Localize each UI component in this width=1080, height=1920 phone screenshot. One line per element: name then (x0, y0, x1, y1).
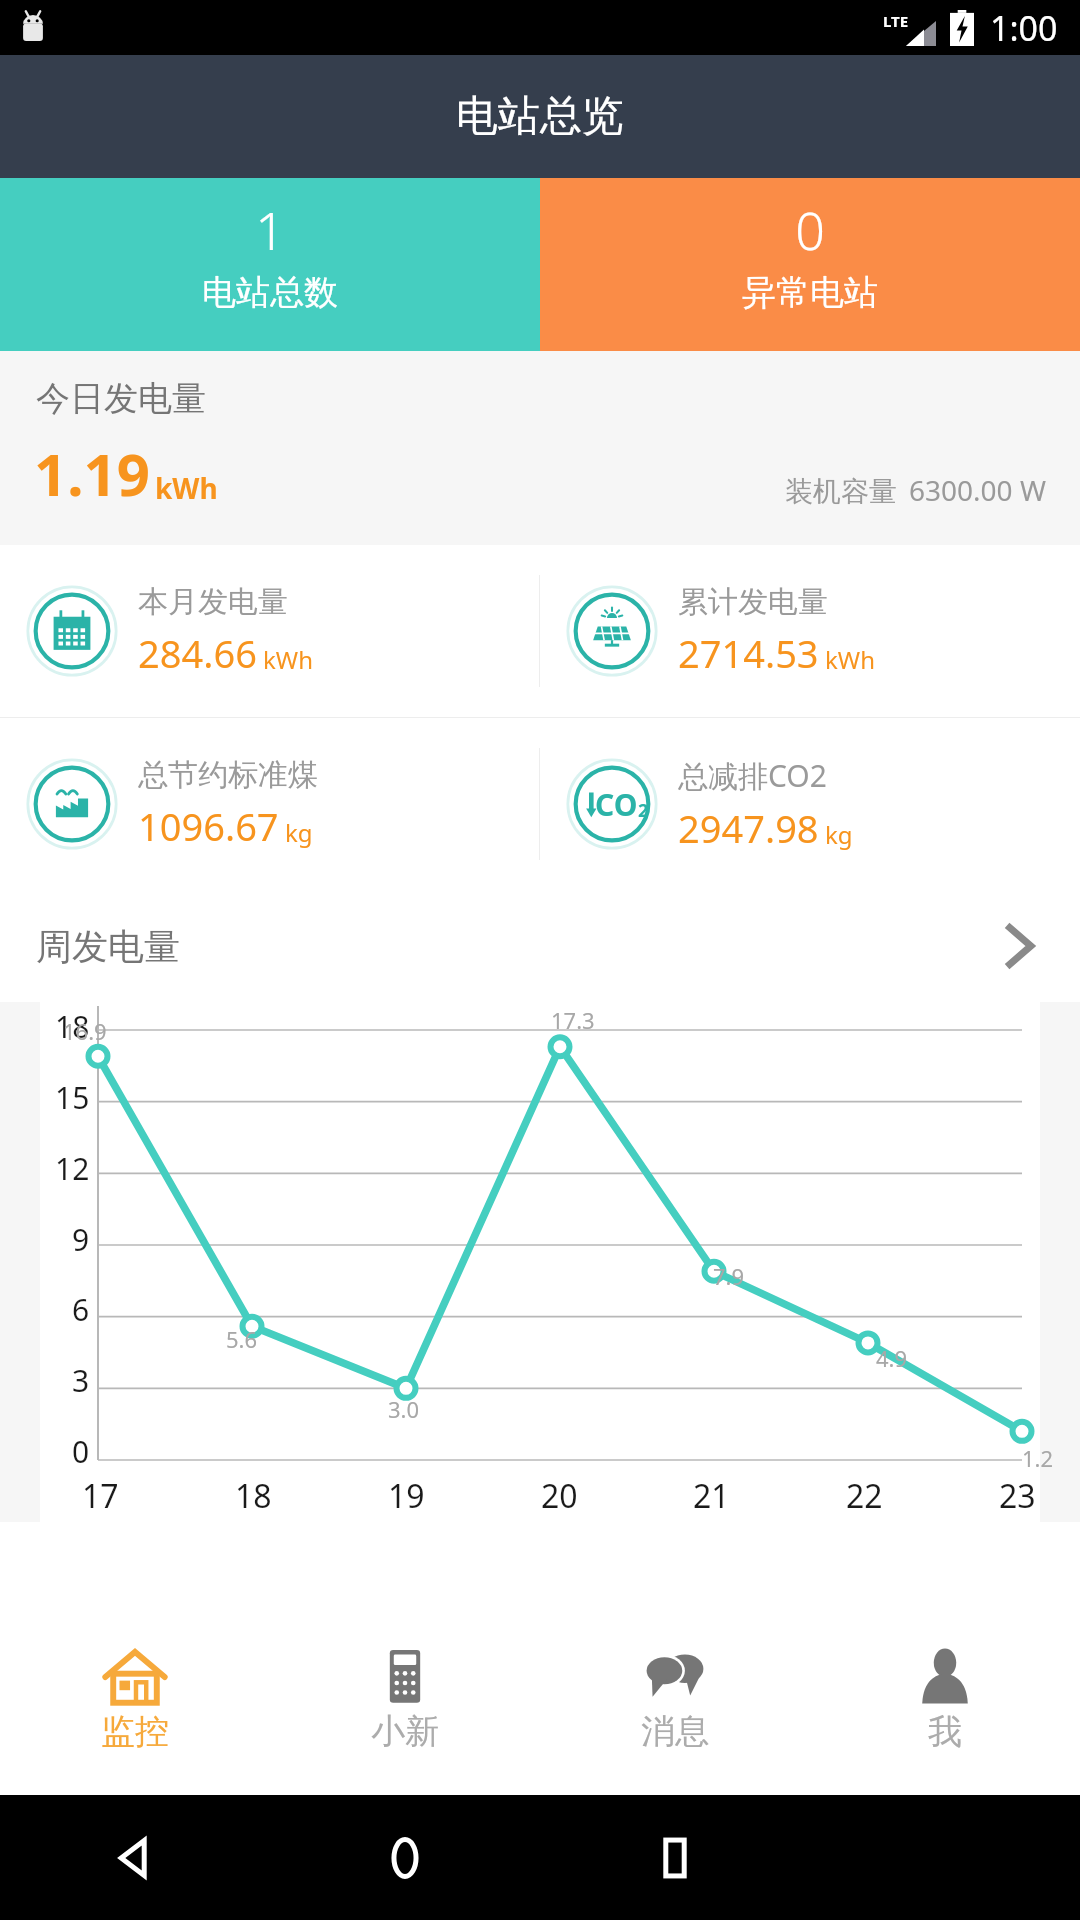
staticText: 今日发电量 (36, 377, 206, 420)
staticText: 1:00 (990, 5, 1058, 51)
staticText: kWh (263, 643, 313, 676)
button[interactable]: 我 (810, 1630, 1080, 1795)
button[interactable]: 周发电量 (0, 890, 1080, 1002)
other: Back (112, 1835, 158, 1881)
button[interactable]: 累计发电量 (540, 545, 1080, 717)
staticText: 6 (72, 1289, 90, 1330)
staticText: 9 (72, 1219, 90, 1260)
button[interactable]: 小新 (270, 1630, 540, 1795)
staticText: 2947.98 (678, 802, 819, 854)
staticText: 本月发电量 (138, 583, 288, 621)
staticText: 19 (388, 1474, 425, 1518)
staticText: 1.2 (1022, 1443, 1054, 1473)
button[interactable]: CO (540, 718, 1080, 890)
staticText: 电站总数 (202, 271, 338, 314)
staticText: 15 (55, 1077, 90, 1118)
staticText: 1 (255, 194, 285, 265)
staticText: 我 (928, 1710, 962, 1753)
staticText: 17.3 (551, 1005, 595, 1035)
staticText: 1.19 (34, 434, 150, 513)
staticText: 21 (693, 1474, 730, 1518)
staticText: 0 (72, 1431, 90, 1472)
staticText: 3.0 (388, 1394, 420, 1424)
staticText: 20 (541, 1474, 578, 1518)
staticText: 16.9 (63, 1016, 107, 1046)
staticText: 小新 (371, 1710, 439, 1753)
staticText: 监控 (101, 1710, 169, 1753)
other: Home (382, 1835, 428, 1881)
staticText: kg (285, 816, 313, 849)
staticText: kWh (155, 469, 218, 507)
staticText: 装机容量 (785, 474, 897, 509)
staticText: 1096.67 (138, 800, 279, 852)
staticText: 0 (795, 194, 825, 265)
staticText: LTE (883, 11, 909, 31)
staticText: CO (595, 784, 638, 825)
staticText: 异常电站 (742, 271, 878, 314)
staticText: 22 (846, 1474, 883, 1518)
staticText: 2714.53 (678, 627, 819, 679)
other: Recents (652, 1835, 698, 1881)
button[interactable]: 监控 (0, 1630, 270, 1795)
staticText: 4.9 (876, 1343, 908, 1373)
staticText: 18 (235, 1474, 272, 1518)
button[interactable]: 总节约标准煤 (0, 718, 539, 890)
staticText: 总减排CO2 (678, 755, 827, 796)
other: Weekly generation details (1002, 918, 1036, 974)
staticText: 18 (55, 1006, 90, 1047)
staticText: 2 (638, 798, 649, 823)
staticText: 累计发电量 (678, 583, 828, 621)
button[interactable]: 1 (0, 178, 540, 351)
staticText: 电站总览 (456, 90, 624, 143)
staticText: 284.66 (138, 627, 257, 679)
button[interactable]: 消息 (540, 1630, 810, 1795)
staticText: 总节约标准煤 (138, 756, 318, 794)
staticText: 23 (999, 1474, 1036, 1518)
button[interactable]: 0 (540, 178, 1080, 351)
staticText: 17 (82, 1474, 119, 1518)
button[interactable]: 本月发电量 (0, 545, 539, 717)
staticText: kWh (825, 643, 875, 676)
staticText: 7.9 (713, 1261, 745, 1291)
staticText: 6300.00 W (909, 471, 1046, 509)
staticText: kg (825, 818, 853, 851)
staticText: 12 (55, 1148, 90, 1189)
staticText: 周发电量 (36, 924, 180, 969)
staticText: 5.6 (226, 1324, 258, 1354)
staticText: 消息 (641, 1710, 709, 1753)
staticText: 3 (72, 1360, 90, 1401)
